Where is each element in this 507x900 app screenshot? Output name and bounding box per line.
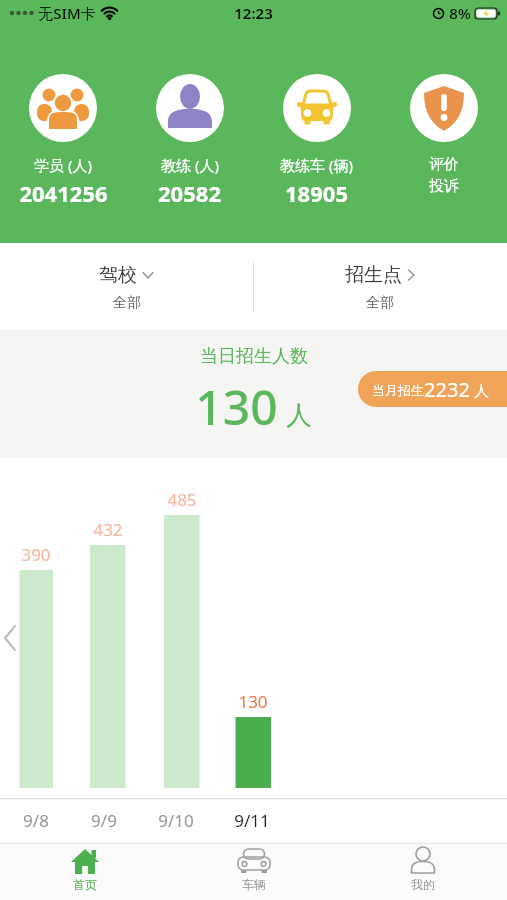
- button[interactable]: 教练车 (辆): [253, 74, 380, 208]
- staticText: 9/10: [158, 809, 194, 832]
- staticText: 20582: [158, 178, 221, 208]
- staticText: 全部: [113, 294, 141, 312]
- staticText: 评价: [429, 155, 459, 174]
- staticText: 18905: [285, 178, 348, 208]
- staticText: 485: [167, 488, 197, 511]
- staticText: 432: [93, 518, 123, 541]
- button[interactable]: 我的: [338, 844, 507, 900]
- staticText: 全部: [366, 294, 394, 312]
- button[interactable]: 学员 (人): [0, 74, 126, 208]
- staticText: 投诉: [429, 177, 459, 196]
- staticText: 9/8: [23, 809, 49, 832]
- button[interactable]: 驾校: [0, 243, 253, 330]
- button[interactable]: 招生点: [253, 243, 507, 330]
- staticText: 2041256: [19, 178, 108, 208]
- staticText: 人: [286, 399, 312, 432]
- staticText: 学员 (人): [34, 155, 92, 175]
- staticText: 130: [238, 690, 268, 713]
- staticText: 无SIM卡: [38, 3, 96, 23]
- staticText: 当月招生: [372, 382, 424, 398]
- staticText: 招生点: [345, 263, 402, 287]
- button[interactable]: 教练 (人): [126, 74, 253, 208]
- button[interactable]: 当月招生: [358, 371, 507, 407]
- staticText: 2232: [424, 376, 470, 403]
- staticText: 9/11: [234, 809, 270, 832]
- button[interactable]: 车辆: [169, 844, 338, 900]
- staticText: 12:23: [234, 3, 273, 23]
- staticText: 教练车 (辆): [280, 155, 353, 175]
- staticText: 390: [21, 543, 51, 566]
- staticText: 9/9: [91, 809, 117, 832]
- staticText: 当日招生人数: [200, 345, 308, 368]
- staticText: 8%: [449, 3, 471, 23]
- staticText: 我的: [411, 877, 435, 892]
- staticText: 130: [195, 374, 278, 439]
- staticText: 教练 (人): [161, 155, 219, 175]
- staticText: 车辆: [242, 877, 266, 892]
- staticText: 首页: [73, 877, 97, 892]
- button[interactable]: 评价: [380, 74, 507, 196]
- staticText: 人: [470, 380, 489, 400]
- staticText: 驾校: [99, 263, 137, 287]
- button[interactable]: 首页: [0, 844, 169, 900]
